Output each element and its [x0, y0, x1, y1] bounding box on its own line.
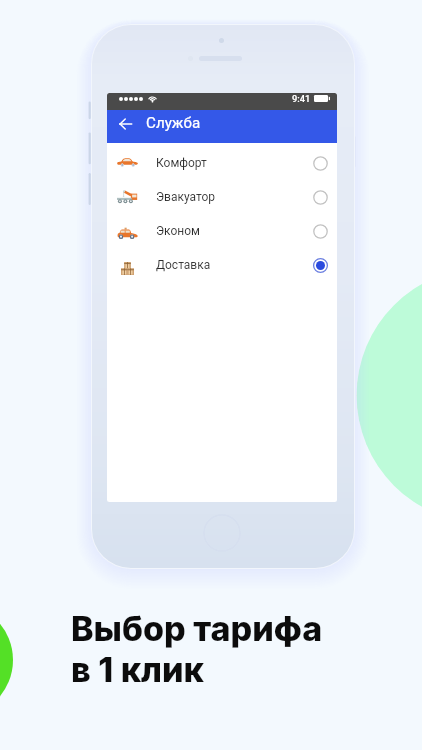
staticText: в 1 клик: [71, 649, 204, 690]
staticText: 9:41: [292, 93, 311, 104]
staticText: Служба: [146, 114, 201, 132]
staticText: Доставка: [156, 258, 211, 272]
button[interactable]: Эвакуатор: [107, 180, 337, 214]
staticText: Комфорт: [156, 156, 207, 170]
staticText: Выбор тарифа: [71, 608, 323, 649]
staticText: Эвакуатор: [156, 190, 216, 204]
button[interactable]: Доставка: [107, 248, 337, 282]
button[interactable]: Комфорт: [107, 146, 337, 180]
button[interactable]: Back: [116, 110, 135, 134]
button[interactable]: Эконом: [107, 214, 337, 248]
staticText: Эконом: [156, 224, 200, 238]
